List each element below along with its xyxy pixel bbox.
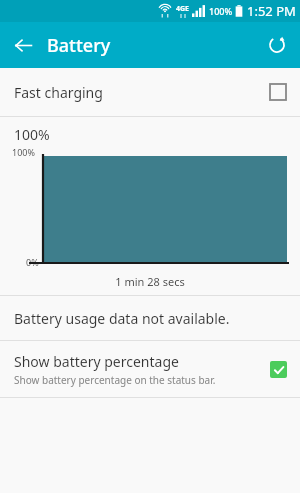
staticText: 4GE (176, 4, 189, 14)
staticText: Battery (47, 33, 111, 58)
staticText: Battery usage data not available. (14, 309, 230, 328)
button[interactable]: Refresh (260, 28, 294, 62)
button[interactable]: Battery usage data not available. (0, 296, 300, 340)
button[interactable]: Show battery percentage (0, 341, 300, 397)
button[interactable]: Fast charging (0, 68, 300, 116)
button[interactable]: Back (6, 28, 40, 62)
staticText: 100% (209, 5, 233, 17)
staticText: Show battery percentage on the status ba… (14, 373, 216, 387)
staticText: 1:52 PM (247, 2, 296, 20)
staticText: Show battery percentage (14, 352, 179, 371)
staticText: 1 min 28 secs (0, 274, 300, 289)
staticText: 0% (26, 256, 39, 268)
staticText: Fast charging (14, 83, 103, 102)
staticText: 100% (12, 146, 35, 158)
staticText: 100% (14, 125, 50, 144)
